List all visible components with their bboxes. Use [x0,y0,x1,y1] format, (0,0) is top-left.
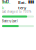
staticText: Battery Level [2,19,18,23]
staticText: Back [2,0,10,10]
button[interactable]: Back [2,0,10,10]
staticText: Last charged to 100% [2,10,31,13]
staticText: Battery [18,0,26,10]
staticText: 9:41 [2,0,9,4]
staticText: ▮▮▮ [28,0,34,4]
